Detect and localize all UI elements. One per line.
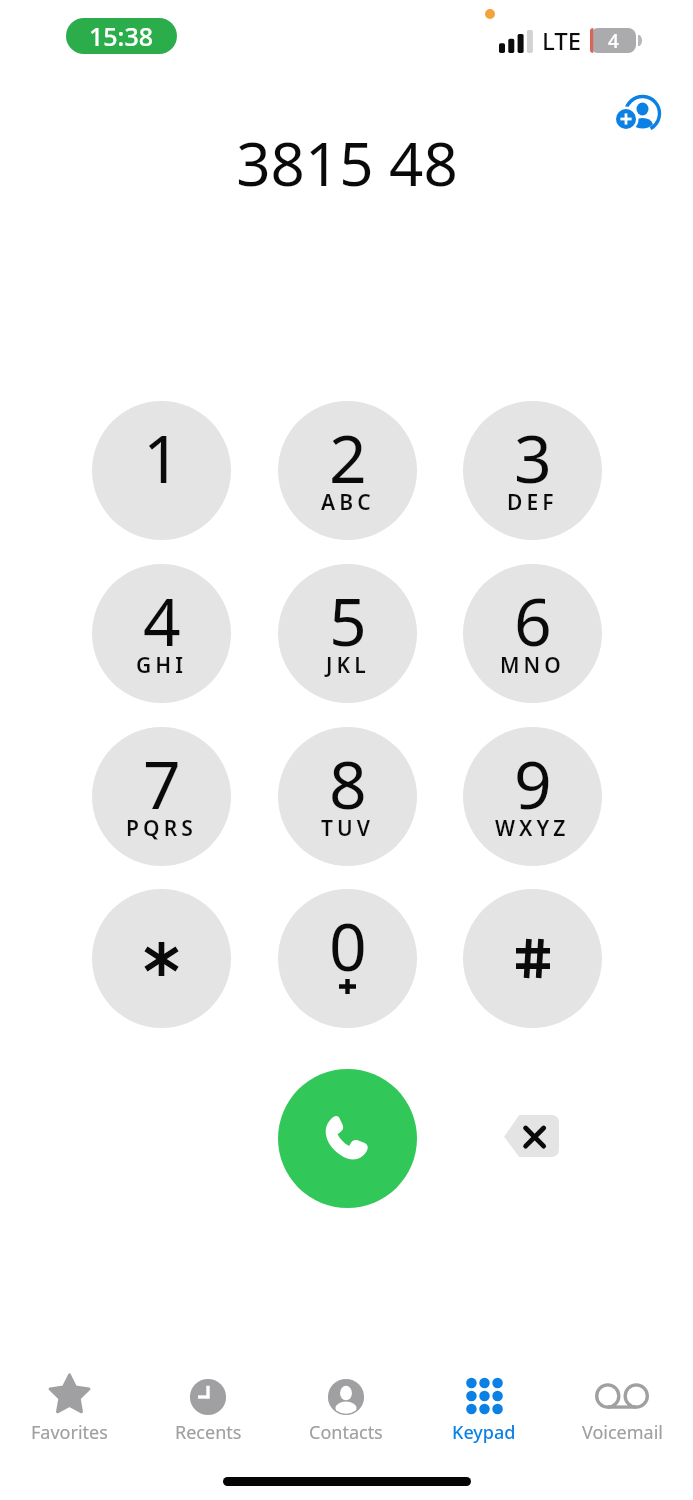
staticText: ABC (321, 488, 375, 517)
staticText: 6 (514, 575, 552, 665)
button[interactable]: Recents (139, 1366, 277, 1448)
staticText: 0 (329, 900, 367, 990)
staticText: Keypad (452, 1420, 516, 1445)
button[interactable]: Keypad (415, 1366, 553, 1448)
button[interactable]: Favorites (0, 1366, 138, 1448)
staticText: 8 (329, 738, 367, 828)
button[interactable]: 2 (278, 401, 417, 540)
button[interactable]: Voicemail (553, 1366, 691, 1448)
staticText: Contacts (309, 1420, 383, 1445)
button[interactable]: Add contact (614, 91, 662, 135)
button[interactable]: 1 (92, 401, 231, 540)
staticText: DEF (507, 488, 558, 517)
button[interactable] (92, 889, 231, 1028)
button[interactable]: Delete (503, 1115, 559, 1157)
staticText: WXYZ (495, 814, 570, 843)
button[interactable]: 5 (278, 564, 417, 703)
staticText: 3 (514, 412, 552, 502)
staticText: 7 (143, 738, 181, 828)
staticText: 9 (514, 738, 552, 828)
staticText: MNO (500, 651, 565, 680)
staticText: 4 (143, 575, 181, 665)
staticText: JKL (326, 651, 370, 680)
staticText: 2 (329, 412, 367, 502)
button[interactable]: 7 (92, 727, 231, 866)
button[interactable]: 0 (278, 889, 417, 1028)
button[interactable]: Call (278, 1069, 417, 1208)
staticText: PQRS (126, 814, 197, 843)
staticText: GHI (136, 651, 188, 680)
staticText: 15:38 (89, 19, 154, 53)
button[interactable]: 3 (463, 401, 602, 540)
button[interactable]: 9 (463, 727, 602, 866)
staticText: LTE (542, 24, 582, 57)
staticText: 4 (608, 28, 619, 53)
staticText: 5 (329, 575, 367, 665)
staticText: Recents (175, 1420, 242, 1445)
button[interactable]: Contacts (277, 1366, 415, 1448)
staticText: Favorites (31, 1420, 108, 1445)
staticText: Voicemail (582, 1420, 663, 1445)
button[interactable] (463, 889, 602, 1028)
button[interactable]: 8 (278, 727, 417, 866)
staticText: 1 (143, 412, 181, 502)
staticText: 3815 48 (236, 122, 458, 204)
button[interactable]: 6 (463, 564, 602, 703)
button[interactable]: 4 (92, 564, 231, 703)
staticText: TUV (321, 814, 375, 843)
